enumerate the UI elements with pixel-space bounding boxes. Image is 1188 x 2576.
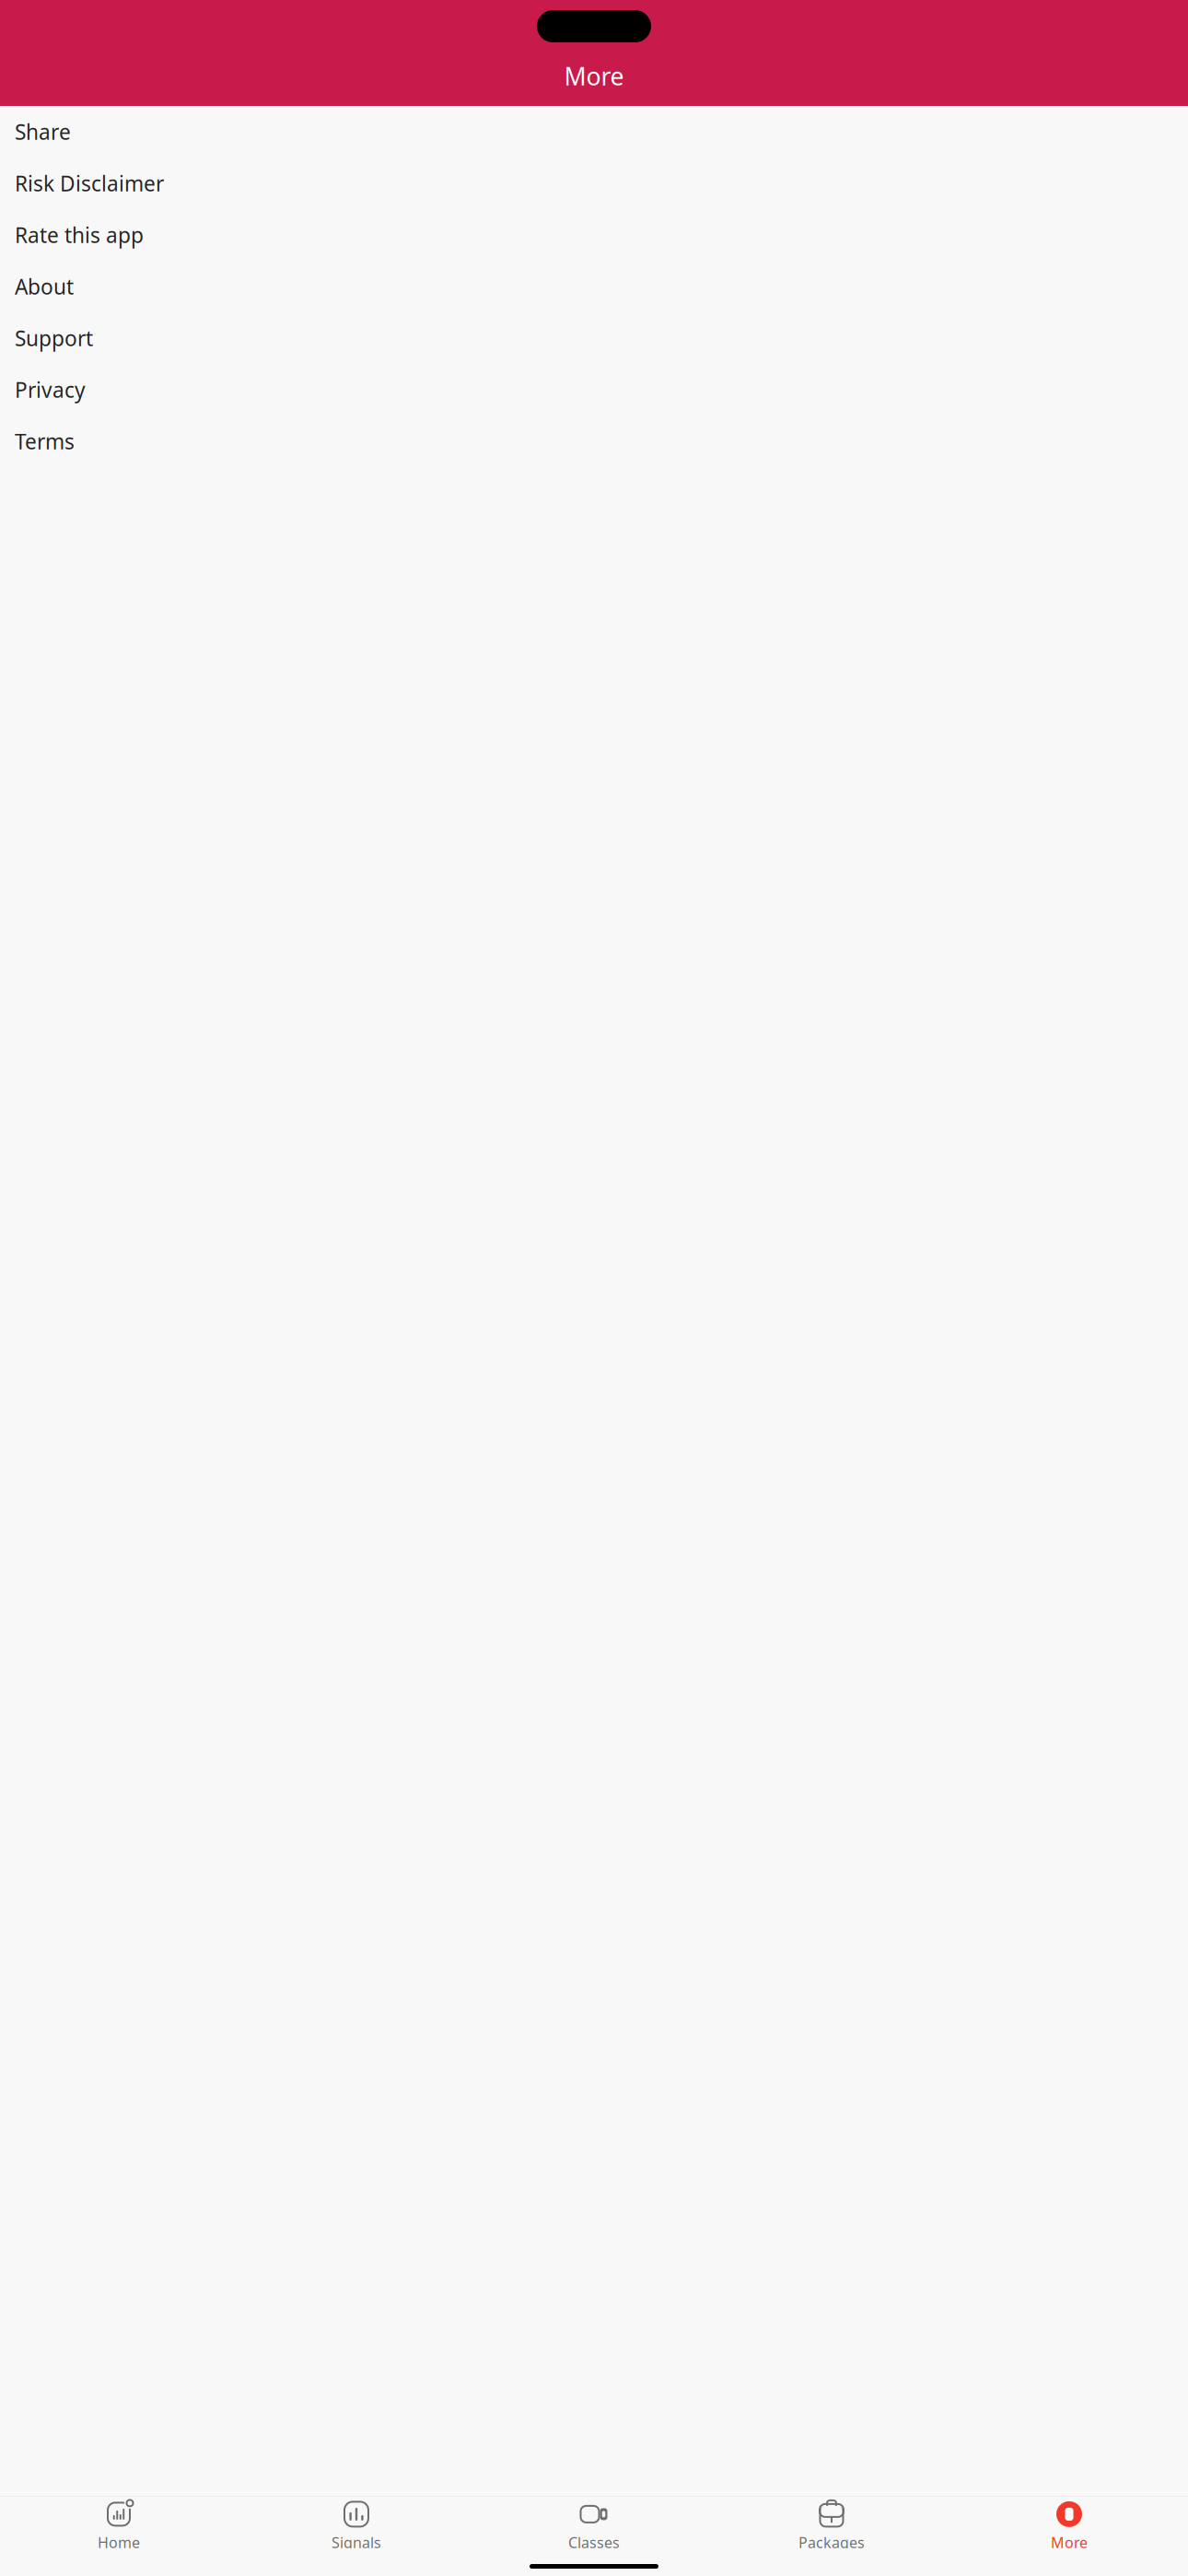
staticText: Classes <box>568 2533 620 2552</box>
staticText: Signals <box>332 2533 381 2552</box>
staticText: Privacy <box>15 376 86 404</box>
staticText: Home <box>98 2533 140 2552</box>
staticText: More <box>1051 2533 1088 2552</box>
button[interactable]: Support <box>0 312 1188 364</box>
button[interactable]: About <box>0 261 1188 312</box>
button[interactable]: Terms <box>0 416 1188 467</box>
staticText: Risk Disclaimer <box>15 169 164 197</box>
staticText: More <box>564 60 624 92</box>
button[interactable]: Classes <box>475 2493 713 2552</box>
button[interactable]: Rate this app <box>0 209 1188 261</box>
staticText: About <box>15 273 74 300</box>
staticText: Packages <box>798 2533 865 2552</box>
staticText: Share <box>15 118 71 146</box>
button[interactable]: Packages <box>713 2493 950 2552</box>
button[interactable]: Signals <box>238 2493 475 2552</box>
staticText: Rate this app <box>15 221 144 249</box>
button[interactable]: More <box>950 2493 1188 2552</box>
button[interactable]: Privacy <box>0 364 1188 416</box>
button[interactable]: Share <box>0 106 1188 158</box>
staticText: Support <box>15 324 93 352</box>
button[interactable]: Home <box>0 2493 238 2552</box>
staticText: Terms <box>15 427 75 455</box>
button[interactable]: Risk Disclaimer <box>0 158 1188 209</box>
